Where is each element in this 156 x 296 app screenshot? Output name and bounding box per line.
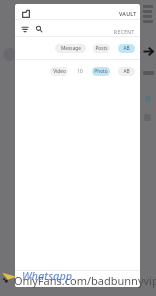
staticText: Message <box>61 45 81 52</box>
button[interactable]: Search <box>33 23 45 35</box>
staticText: Posts <box>95 45 108 52</box>
button[interactable]: AB <box>118 67 135 76</box>
button[interactable]: AB <box>118 44 135 53</box>
staticText: AB <box>123 45 130 52</box>
button[interactable]: Photo <box>92 67 110 76</box>
button[interactable]: Posts <box>93 44 110 53</box>
staticText: Whatsapp <box>22 268 73 283</box>
button[interactable]: Next <box>141 44 155 58</box>
button[interactable]: Video <box>50 67 68 76</box>
staticText: 10 <box>77 68 83 75</box>
staticText: Video <box>53 68 66 75</box>
button[interactable]: 10 <box>74 67 86 76</box>
button[interactable]: Collections <box>20 8 32 20</box>
staticText: Photo <box>94 68 108 75</box>
staticText: AB <box>123 68 130 75</box>
staticText: OnlyFans.com/badbunnyvip <box>14 273 156 288</box>
button[interactable]: Filter <box>19 23 31 35</box>
staticText: RECENT <box>114 29 135 36</box>
staticText: VAULT <box>119 10 137 17</box>
button[interactable]: Message <box>55 44 86 53</box>
